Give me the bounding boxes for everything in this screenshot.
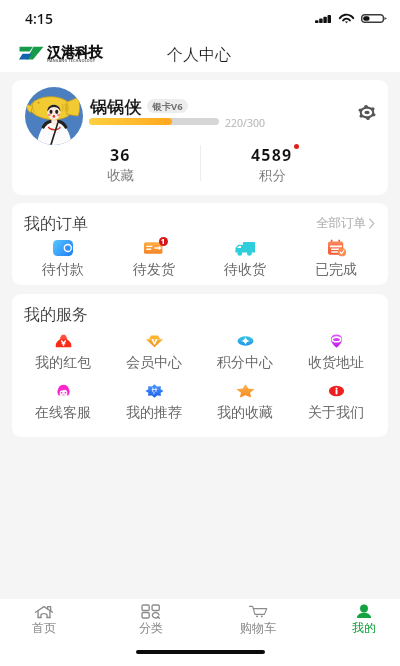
staticText: 我的服务 [24,305,88,325]
staticText: 我的订单 [24,214,88,234]
button[interactable]: 会员中心 [122,332,186,378]
button[interactable]: 已完成 [306,238,366,283]
button[interactable]: 首页 [14,599,74,641]
button[interactable]: 4589 [232,144,312,184]
staticText: 汉港科技 [47,44,103,62]
staticText: 36 [110,144,131,166]
button[interactable]: 分类 [121,599,181,641]
button[interactable]: 我的推荐 [122,382,186,428]
staticText: 锅锅侠 [90,97,141,118]
staticText: 购物车 [240,620,276,635]
staticText: 积分 [259,167,286,184]
staticText: 全部订单 [316,215,366,231]
button[interactable]: 在线客服 [31,382,95,428]
staticText: 我的 [352,620,376,635]
staticText: 银卡V6 [152,100,183,113]
staticText: 关于我们 [308,404,364,422]
button[interactable]: 全部订单 [313,212,377,234]
staticText: 分类 [139,620,163,635]
button[interactable]: 我的红包 [31,332,95,378]
button[interactable]: 待收货 [215,238,275,283]
staticText: 待发货 [133,261,175,279]
staticText: 1 [161,237,166,246]
button[interactable]: 设置 [355,100,379,124]
staticText: 已完成 [315,261,357,279]
button[interactable]: 36 [80,144,160,184]
button[interactable]: 头像 [25,87,83,145]
staticText: 收货地址 [308,354,364,372]
staticText: 220/300 [225,116,265,130]
staticText: 待付款 [42,261,84,279]
staticText: 4589 [251,144,293,166]
staticText: 积分中心 [217,354,273,372]
staticText: 我的推荐 [126,404,182,422]
staticText: 个人中心 [167,45,231,65]
staticText: 待收货 [224,261,266,279]
button[interactable]: 我的收藏 [213,382,277,428]
button[interactable]: 积分中心 [213,332,277,378]
staticText: 在线客服 [35,404,91,422]
staticText: 我的红包 [35,354,91,372]
button[interactable]: 购物车 [228,599,288,641]
staticText: 会员中心 [126,354,182,372]
staticText: 首页 [32,620,56,635]
staticText: HANGANG TECHNOLOGY [47,58,96,63]
button[interactable]: 关于我们 [304,382,368,428]
staticText: 我的收藏 [217,404,273,422]
button[interactable]: 待付款 [33,238,93,283]
button[interactable]: 我的 [334,599,394,641]
staticText: 4:15 [25,9,53,28]
staticText: 收藏 [107,167,134,184]
button[interactable]: 1 [124,238,184,283]
button[interactable]: 收货地址 [304,332,368,378]
